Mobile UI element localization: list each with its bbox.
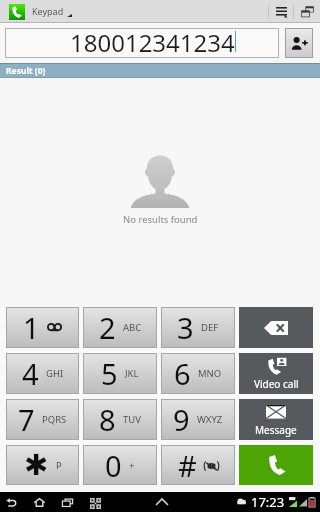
- button[interactable]: 3: [161, 307, 235, 348]
- staticText: No results found: [123, 213, 198, 226]
- staticText: 6: [174, 354, 191, 393]
- button[interactable]: Menu: [269, 0, 293, 23]
- button[interactable]: Message: [239, 399, 313, 440]
- button[interactable]: 6: [161, 353, 235, 394]
- staticText: GHI: [46, 367, 64, 380]
- staticText: 5: [101, 354, 118, 393]
- staticText: 3: [177, 308, 194, 347]
- button[interactable]: Call: [239, 445, 313, 485]
- button[interactable]: Screenshot: [85, 492, 105, 512]
- staticText: 0: [105, 446, 122, 485]
- staticText: P: [56, 459, 62, 472]
- staticText: WXYZ: [197, 413, 223, 426]
- staticText: 1: [23, 308, 40, 347]
- staticText: Result (0): [6, 65, 46, 77]
- button[interactable]: Delete: [239, 307, 313, 348]
- button[interactable]: 8: [83, 399, 157, 440]
- staticText: Video call: [254, 377, 299, 391]
- staticText: PQRS: [42, 413, 67, 426]
- staticText: 17:23: [251, 493, 285, 511]
- button[interactable]: 1: [6, 307, 79, 348]
- button[interactable]: 9: [161, 399, 235, 440]
- button[interactable]: 4: [6, 353, 79, 394]
- button[interactable]: Add contact: [285, 28, 313, 58]
- staticText: MNO: [198, 367, 222, 380]
- button[interactable]: Home: [29, 492, 49, 512]
- staticText: DEF: [201, 321, 219, 334]
- staticText: 8: [99, 400, 116, 439]
- staticText: #: [178, 446, 197, 485]
- staticText: TUV: [123, 413, 141, 426]
- staticText: Message: [255, 423, 297, 437]
- staticText: ABC: [123, 321, 142, 334]
- button[interactable]: Multi window: [294, 0, 320, 23]
- staticText: 7: [18, 400, 35, 439]
- button[interactable]: 0: [83, 445, 157, 485]
- staticText: 2: [99, 308, 116, 347]
- button[interactable]: ✱: [6, 445, 79, 485]
- button[interactable]: Back: [1, 492, 21, 512]
- button[interactable]: 7: [6, 399, 79, 440]
- button[interactable]: #: [161, 445, 235, 485]
- button[interactable]: Recents: [57, 492, 77, 512]
- staticText: Keypad: [32, 5, 64, 17]
- button[interactable]: 5: [83, 353, 157, 394]
- button[interactable]: 180012341234: [5, 28, 279, 58]
- button[interactable]: 2: [83, 307, 157, 348]
- staticText: 180012341234: [70, 26, 235, 56]
- staticText: ✱: [24, 448, 49, 482]
- button[interactable]: Video call: [239, 353, 313, 394]
- staticText: JKL: [125, 367, 139, 380]
- staticText: 9: [173, 400, 190, 439]
- button[interactable]: Phone: [9, 4, 25, 20]
- button[interactable]: Keypad: [32, 6, 72, 18]
- staticText: +: [129, 459, 135, 472]
- staticText: 4: [22, 354, 39, 393]
